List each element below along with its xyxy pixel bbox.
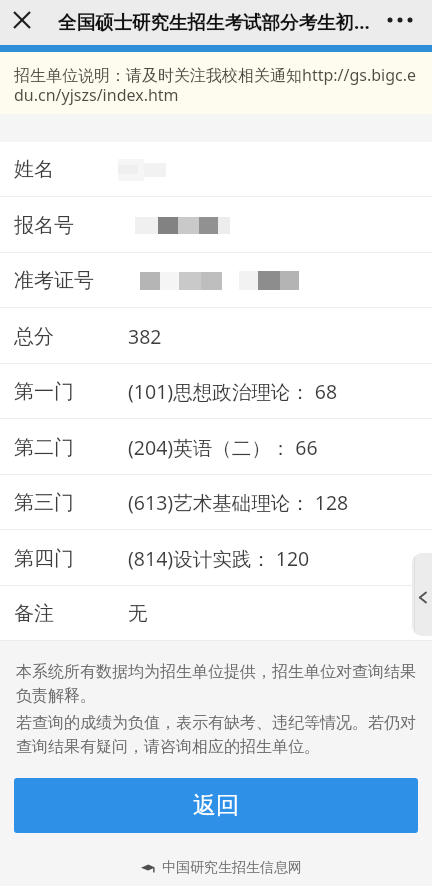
button[interactable]: 中国研究生招生信息网 [0, 859, 432, 877]
staticText: 中国研究生招生信息网 [162, 859, 302, 877]
button[interactable]: Close [0, 0, 44, 39]
button[interactable]: More options [378, 0, 422, 39]
staticText: 备注 [14, 601, 54, 626]
staticText: (204)英语（二）： 66 [128, 434, 318, 461]
staticText: (101)思想政治理论： 68 [128, 378, 338, 405]
button[interactable]: 第二门 [0, 419, 432, 475]
button[interactable]: 准考证号 [0, 253, 432, 308]
button[interactable]: 姓名 [0, 142, 432, 197]
button[interactable]: Expand panel [412, 553, 432, 636]
staticText: 第一门 [14, 379, 74, 404]
staticText: 若查询的成绩为负值，表示有缺考、违纪等情况。若仍对查询结果有疑问，请咨询相应的招… [16, 713, 416, 757]
staticText: 本系统所有数据均为招生单位提供，招生单位对查询结果负责解释。 [16, 662, 416, 706]
staticText: 第二门 [14, 435, 74, 460]
staticText: 第四门 [14, 546, 74, 571]
staticText: 姓名 [14, 157, 54, 182]
staticText: 382 [128, 323, 162, 350]
staticText: 第三门 [14, 490, 74, 515]
staticText: (814)设计实践： 120 [128, 545, 310, 572]
button[interactable]: 第一门 [0, 364, 432, 419]
button[interactable]: 第四门 [0, 530, 432, 586]
button[interactable]: 返回 [14, 778, 418, 833]
staticText: (613)艺术基础理论： 128 [128, 489, 349, 516]
staticText: 总分 [14, 324, 54, 349]
staticText: 全国硕士研究生招生考试部分考生初... [58, 9, 370, 34]
button[interactable]: 报名号 [0, 197, 432, 253]
staticText: 返回 [193, 791, 239, 820]
staticText: 报名号 [14, 213, 74, 238]
button[interactable]: 总分 [0, 308, 432, 364]
staticText: 招生单位说明：请及时关注我校相关通知http://gs.bigc.e du.cn… [14, 64, 417, 106]
button[interactable]: 备注 [0, 586, 432, 641]
button[interactable]: 第三门 [0, 475, 432, 530]
staticText: 准考证号 [14, 268, 94, 293]
staticText: 无 [128, 601, 148, 626]
